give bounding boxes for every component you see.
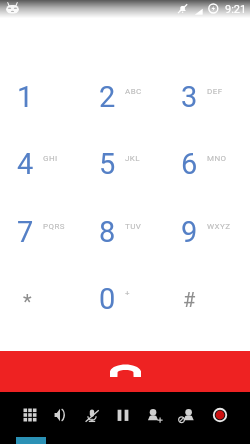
staticText: 7 [17, 215, 34, 249]
staticText: JKL [125, 154, 141, 163]
staticText: WXYZ [207, 222, 231, 231]
staticText: TUV [125, 222, 142, 231]
button[interactable]: 4 [0, 130, 66, 197]
button[interactable]: 7 [0, 198, 66, 265]
staticText: + [125, 289, 130, 298]
button[interactable]: Manage conference [173, 401, 201, 429]
staticText: 9 [181, 215, 198, 249]
staticText: * [23, 290, 32, 313]
button[interactable]: # [148, 265, 230, 332]
staticText: 9:21 [225, 3, 247, 16]
staticText: # [183, 288, 196, 311]
staticText: 5 [99, 147, 116, 181]
staticText: 6 [181, 147, 198, 181]
button[interactable]: * [0, 265, 66, 332]
staticText: PQRS [43, 222, 66, 231]
staticText: ABC [125, 87, 142, 96]
staticText: 1 [17, 80, 34, 114]
button[interactable]: 5 [66, 130, 148, 197]
button[interactable]: Dialpad [16, 401, 44, 429]
button[interactable]: Hold [109, 401, 137, 429]
button[interactable]: 1 [0, 63, 66, 130]
button[interactable]: 2 [66, 63, 148, 130]
button[interactable]: Speaker [46, 401, 74, 429]
staticText: 8 [99, 215, 116, 249]
staticText: GHI [43, 154, 58, 163]
staticText: 3 [181, 80, 198, 114]
staticText: MNO [207, 154, 227, 163]
staticText: 0 [99, 282, 116, 316]
button[interactable]: Mute [78, 401, 106, 429]
button[interactable]: 9 [148, 198, 230, 265]
staticText: 4 [17, 147, 34, 181]
staticText: DEF [207, 87, 223, 96]
staticText: 2 [99, 80, 116, 114]
button[interactable]: 3 [148, 63, 230, 130]
button[interactable]: 8 [66, 198, 148, 265]
button[interactable]: 6 [148, 130, 230, 197]
button[interactable]: Record [206, 401, 234, 429]
button[interactable]: End call [0, 351, 250, 392]
button[interactable]: 0 [66, 265, 148, 332]
button[interactable]: Add call [140, 401, 168, 429]
